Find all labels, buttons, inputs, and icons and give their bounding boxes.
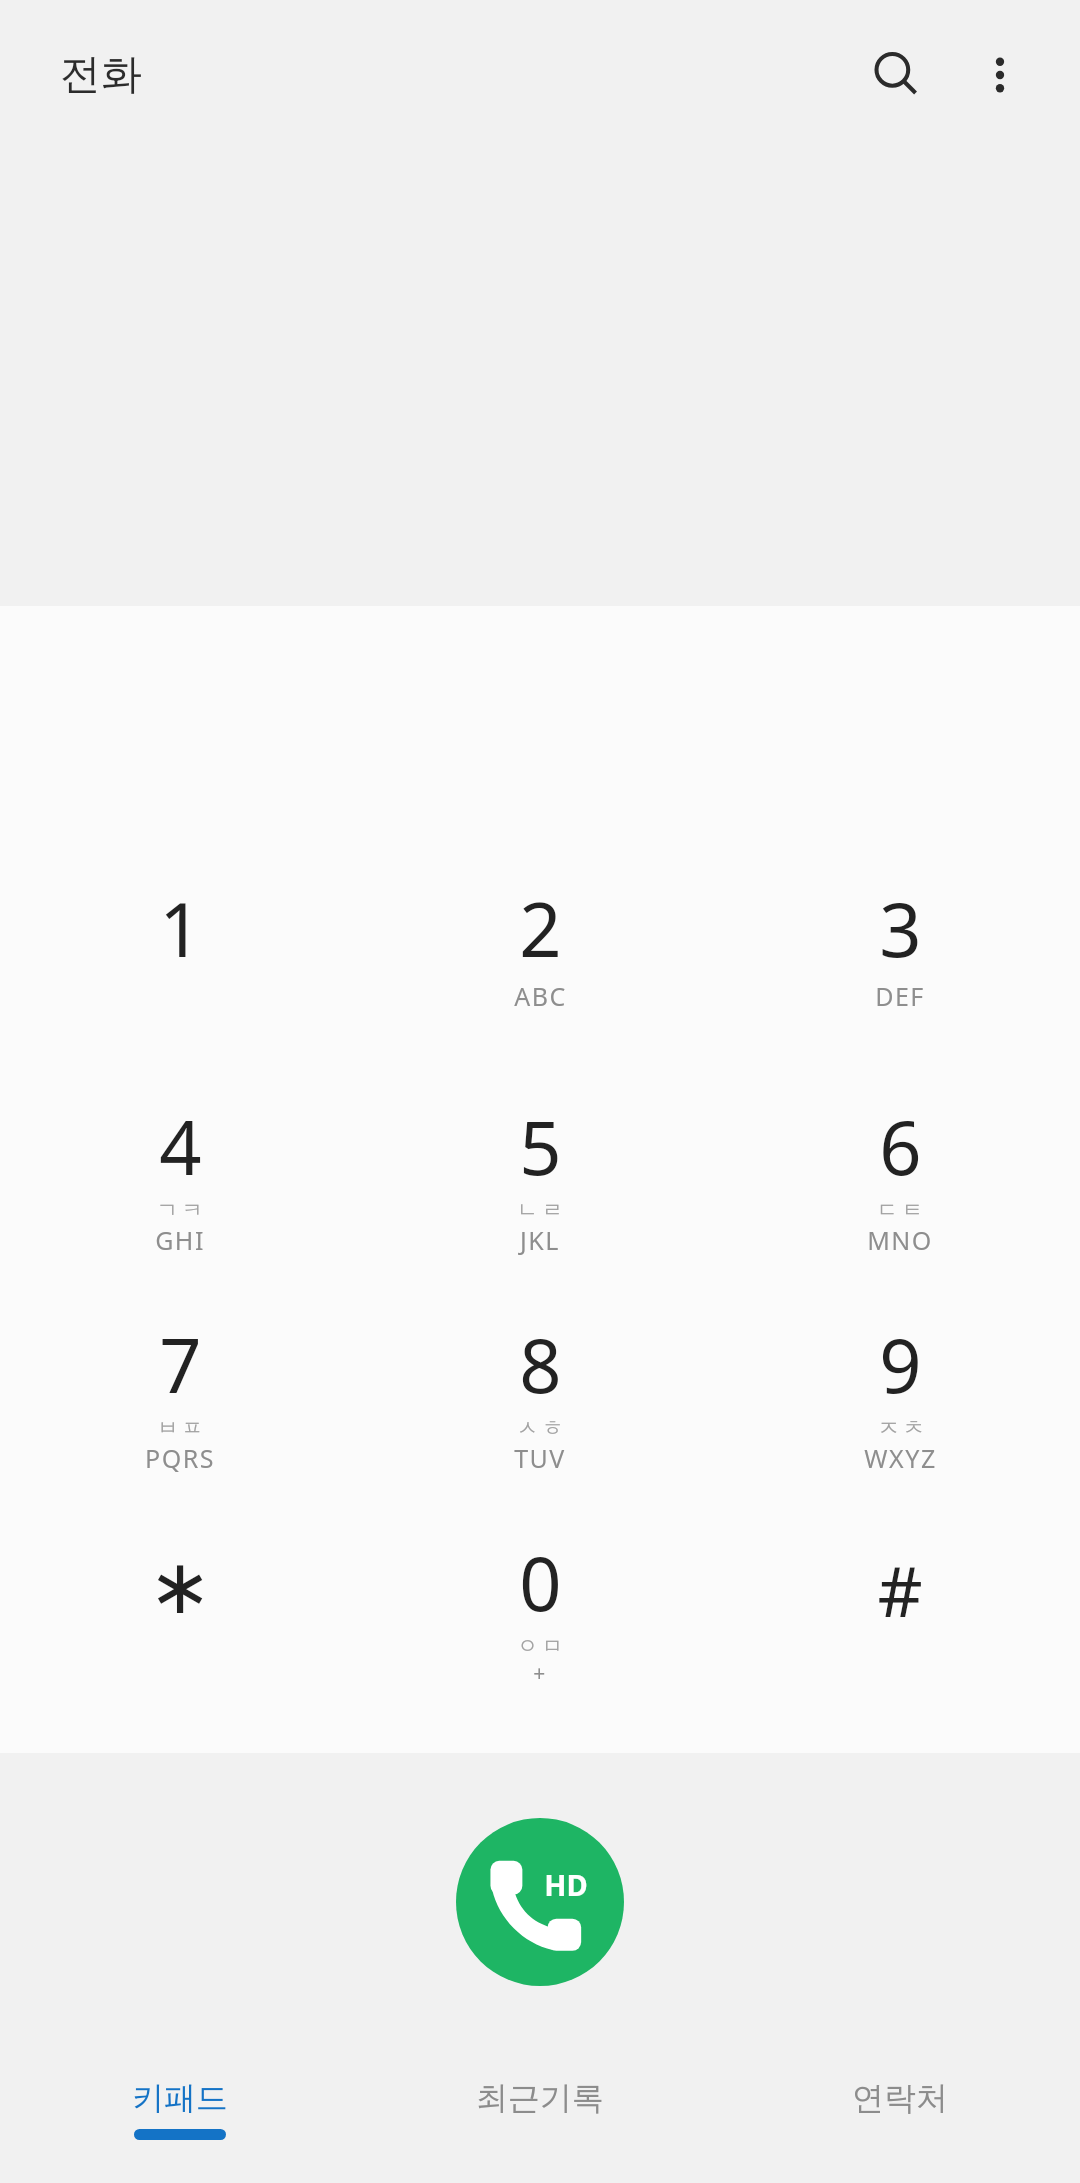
staticText: ∗: [148, 1542, 212, 1630]
staticText: ㄱㅋ: [155, 1197, 205, 1223]
staticText: ㄴㄹ: [515, 1197, 565, 1223]
button[interactable]: More options: [948, 23, 1052, 127]
button[interactable]: 1: [0, 878, 360, 1096]
button[interactable]: 5: [360, 1096, 720, 1314]
staticText: 전화: [60, 49, 142, 101]
staticText: 2: [519, 878, 562, 979]
staticText: 8: [519, 1314, 562, 1415]
button[interactable]: 0: [360, 1532, 720, 1750]
button[interactable]: Search: [844, 23, 948, 127]
button[interactable]: #: [720, 1532, 1080, 1750]
staticText: 0: [519, 1532, 562, 1633]
staticText: ㄷㅌ: [875, 1197, 925, 1223]
staticText: JKL: [520, 1223, 560, 1257]
staticText: +: [533, 1659, 547, 1688]
button[interactable]: ∗: [0, 1532, 360, 1750]
button[interactable]: 4: [0, 1096, 360, 1314]
button[interactable]: 최근기록: [360, 2050, 720, 2183]
button[interactable]: 6: [720, 1096, 1080, 1314]
button[interactable]: 9: [720, 1314, 1080, 1532]
staticText: 1: [159, 878, 202, 979]
button[interactable]: 키패드: [0, 2050, 360, 2183]
staticText: WXYZ: [864, 1441, 937, 1475]
staticText: ㅈㅊ: [876, 1415, 926, 1441]
staticText: ABC: [514, 979, 567, 1013]
button[interactable]: 7: [0, 1314, 360, 1532]
staticText: TUV: [514, 1441, 566, 1475]
staticText: DEF: [875, 979, 925, 1013]
button[interactable]: 8: [360, 1314, 720, 1532]
staticText: 키패드: [132, 2078, 228, 2118]
staticText: HD: [544, 1865, 588, 1904]
staticText: 최근기록: [476, 2078, 604, 2118]
staticText: ㅂㅍ: [155, 1415, 205, 1441]
staticText: PQRS: [145, 1441, 215, 1475]
staticText: 연락처: [852, 2078, 948, 2118]
staticText: ㅇㅁ: [515, 1633, 565, 1659]
staticText: 9: [879, 1314, 922, 1415]
button[interactable]: 2: [360, 878, 720, 1096]
staticText: #: [877, 1542, 923, 1637]
staticText: GHI: [155, 1223, 205, 1257]
staticText: 4: [159, 1096, 202, 1197]
button[interactable]: 연락처: [720, 2050, 1080, 2183]
staticText: ㅅㅎ: [515, 1415, 565, 1441]
button[interactable]: Call: [456, 1818, 624, 1986]
staticText: 7: [159, 1314, 202, 1415]
staticText: 6: [879, 1096, 922, 1197]
staticText: 3: [879, 878, 922, 979]
staticText: MNO: [867, 1223, 933, 1257]
button[interactable]: 3: [720, 878, 1080, 1096]
staticText: 5: [519, 1096, 562, 1197]
